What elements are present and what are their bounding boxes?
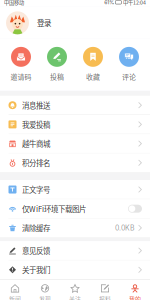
staticText: 越牛商城 <box>22 138 50 149</box>
button[interactable]: 评论 <box>114 39 144 91</box>
button[interactable]: 意见反馈 <box>0 241 150 260</box>
button[interactable]: 登录 <box>0 7 150 39</box>
staticText: 中午12:04 <box>123 0 146 6</box>
staticText: 评论 <box>122 71 136 81</box>
staticText: 正文字号 <box>22 184 50 195</box>
staticText: 消息推送 <box>22 100 50 111</box>
button[interactable]: 邀请码 <box>6 39 36 91</box>
button[interactable]: 消息推送 <box>0 96 150 114</box>
button[interactable]: 积分排名 <box>0 153 150 172</box>
staticText: 清除缓存 <box>22 222 50 233</box>
button[interactable]: 收藏 <box>78 39 108 91</box>
button[interactable]: 新闻 <box>0 280 30 300</box>
button[interactable]: 投稿 <box>42 39 72 91</box>
staticText: 收藏 <box>86 71 100 81</box>
button[interactable]: 越牛商城 <box>0 134 150 153</box>
staticText: 中国移动 <box>4 0 24 6</box>
staticText: 邀请码 <box>10 71 31 81</box>
staticText: 关注 <box>69 294 81 300</box>
button[interactable]: 仅WiFi环境下载图片 <box>0 199 150 218</box>
staticText: 0.0KB <box>115 224 135 232</box>
button[interactable]: 关注 <box>60 280 90 300</box>
button[interactable]: 关于我们 <box>0 260 150 279</box>
staticText: 登录 <box>37 17 51 28</box>
staticText: 报料 <box>99 294 111 300</box>
staticText: 我的 <box>129 294 141 300</box>
staticText: 投稿 <box>50 71 64 81</box>
staticText: 新闻 <box>9 294 21 300</box>
button[interactable]: 发现 <box>30 280 60 300</box>
staticText: 仅WiFi环境下载图片 <box>22 203 86 214</box>
button[interactable]: 我的 <box>120 280 150 300</box>
staticText: 意见反馈 <box>22 245 50 256</box>
staticText: 61% <box>104 0 114 5</box>
staticText: 我爱投稿 <box>22 119 50 130</box>
button[interactable]: 我爱投稿 <box>0 115 150 134</box>
button[interactable]: 报料 <box>90 280 120 300</box>
button[interactable]: 清除缓存 <box>0 219 150 237</box>
staticText: 发现 <box>39 294 51 300</box>
staticText: 关于我们 <box>22 264 50 275</box>
button[interactable]: 正文字号 <box>0 180 150 199</box>
staticText: 积分排名 <box>22 157 50 168</box>
